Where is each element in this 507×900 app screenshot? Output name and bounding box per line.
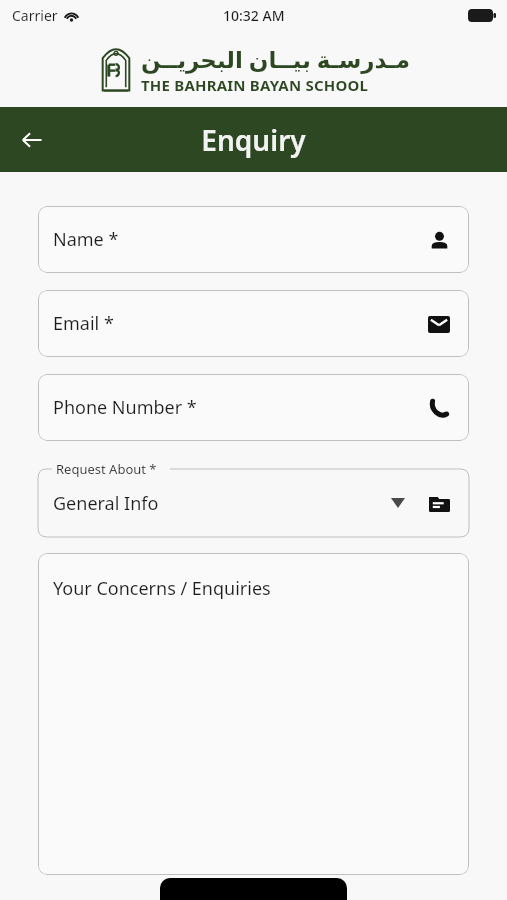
staticText: Your Concerns / Enquiries: [53, 576, 271, 601]
button[interactable]: [160, 878, 347, 900]
staticText: Name *: [53, 227, 119, 252]
button[interactable]: Name *: [38, 206, 469, 273]
staticText: Carrier: [12, 6, 58, 25]
staticText: Enquiry: [201, 121, 306, 159]
button[interactable]: Request About: [425, 489, 453, 517]
staticText: Phone Number *: [53, 395, 197, 420]
button[interactable]: Your Concerns / Enquiries: [38, 553, 469, 875]
button[interactable]: Email: [425, 310, 453, 338]
button[interactable]: Phone Number *: [38, 374, 469, 441]
staticText: مـدرسـة بيــان البحريــن: [141, 43, 410, 74]
staticText: THE BAHRAIN BAYAN SCHOOL: [141, 75, 369, 95]
button[interactable]: Back: [8, 116, 56, 164]
button[interactable]: General Info: [38, 469, 469, 537]
button[interactable]: Phone Number: [425, 394, 453, 422]
button[interactable]: Email *: [38, 290, 469, 357]
staticText: 10:32 AM: [223, 6, 285, 25]
button[interactable]: Name: [425, 226, 453, 254]
staticText: General Info: [53, 491, 159, 516]
staticText: Request About *: [56, 460, 157, 478]
staticText: Email *: [53, 311, 114, 336]
